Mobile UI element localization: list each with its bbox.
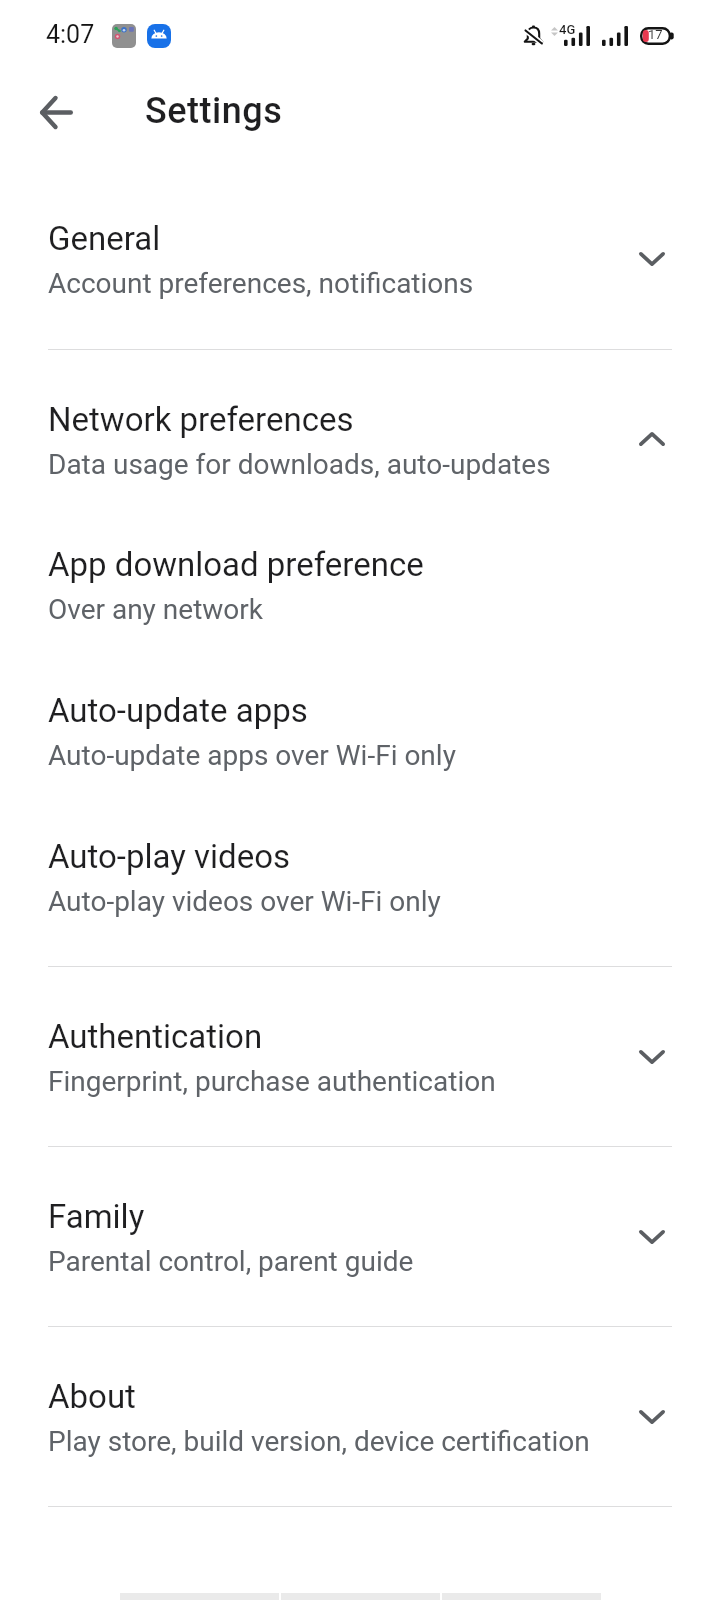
button[interactable]: App download preference (0, 495, 720, 641)
staticText: App download preference (48, 545, 424, 584)
staticText: Auto-update apps (48, 691, 308, 730)
staticText: Parental control, parent guide (48, 1245, 414, 1278)
button[interactable]: About (0, 1327, 720, 1506)
staticText: Fingerprint, purchase authentication (48, 1065, 496, 1098)
staticText: 17 (648, 27, 663, 42)
staticText: Family (48, 1197, 145, 1236)
button[interactable]: Family (0, 1147, 720, 1326)
staticText: Auto-play videos over Wi-Fi only (48, 885, 441, 918)
staticText: General (48, 219, 161, 258)
button[interactable]: Auto-play videos (0, 787, 720, 966)
staticText: Network preferences (48, 400, 354, 439)
button[interactable]: Back (28, 84, 84, 140)
staticText: Play store, build version, device certif… (48, 1425, 590, 1458)
staticText: Auto-play videos (48, 837, 290, 876)
staticText: Account preferences, notifications (48, 267, 474, 300)
staticText: 4:07 (46, 20, 95, 49)
staticText: Over any network (48, 593, 263, 626)
staticText: Authentication (48, 1017, 263, 1056)
staticText: 4G (559, 22, 576, 37)
button[interactable]: General (0, 169, 720, 349)
staticText: Data usage for downloads, auto-updates (48, 448, 551, 481)
staticText: Settings (145, 90, 283, 132)
staticText: Auto-update apps over Wi-Fi only (48, 739, 456, 772)
button[interactable]: Authentication (0, 967, 720, 1146)
staticText: About (48, 1377, 136, 1416)
button[interactable]: Auto-update apps (0, 641, 720, 787)
button[interactable]: Network preferences (0, 350, 720, 495)
